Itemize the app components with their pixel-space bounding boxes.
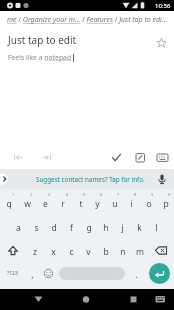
staticText: 9 [151,192,154,197]
staticText: 0 [168,192,171,197]
staticText: Just tap to edit [8,33,77,47]
button[interactable] [0,146,174,169]
staticText: 4 [66,192,69,197]
staticText: x [51,246,56,258]
button[interactable]: x [44,239,62,262]
staticText: v [86,246,91,258]
button[interactable]: b [97,239,114,262]
button[interactable]: v [80,239,97,262]
button[interactable]: Feels like a notepad [8,53,72,62]
button[interactable]: r [54,191,72,215]
staticText: t [79,198,83,210]
staticText: 2 [30,192,33,197]
staticText: y [95,198,100,210]
button[interactable]: h [97,215,114,239]
button[interactable]: p [157,191,174,215]
button[interactable] [148,239,174,262]
staticText: . [135,269,138,281]
staticText: z [33,246,37,258]
staticText: q [6,198,12,210]
staticText: , [31,269,34,281]
button[interactable]: a [9,215,27,239]
button[interactable]: n [114,239,131,262]
staticText: d [51,222,57,234]
button[interactable]: l [148,215,165,239]
staticText: m [136,246,144,258]
button[interactable] [130,289,174,310]
staticText: g [86,222,92,234]
staticText: i [130,198,133,210]
button[interactable]: z [26,239,44,262]
staticText: ?123 [7,270,18,277]
staticText: 8 [134,192,137,197]
staticText: s [34,222,39,234]
button[interactable] [154,35,168,49]
staticText: h [103,222,109,234]
staticText: j [121,222,124,234]
button[interactable]: , [24,262,40,285]
button[interactable]: Suggest contact names? Tap for info. [0,169,174,189]
staticText: f [70,222,73,234]
button[interactable]: f [63,215,80,239]
staticText: 6 [100,192,103,197]
button[interactable]: e [36,191,54,215]
staticText: a [16,222,21,234]
button[interactable]: j [114,215,131,239]
button[interactable]: w [18,191,36,215]
button[interactable] [0,289,43,310]
staticText: l [155,222,158,234]
button[interactable] [40,262,56,285]
staticText: 5 [83,192,86,197]
staticText: w [24,198,31,210]
button[interactable]: . [128,262,144,285]
button[interactable]: y [89,191,106,215]
button[interactable]: s [27,215,45,239]
button[interactable]: c [62,239,80,262]
button[interactable]: g [80,215,97,239]
staticText: e [43,198,48,210]
staticText: b [103,246,109,258]
button[interactable]: ?123 [0,262,24,285]
button[interactable]: u [106,191,123,215]
button[interactable]: k [131,215,148,239]
button[interactable]: t [72,191,89,215]
button[interactable]: me / Organize your m… / Features / Just … [0,11,174,26]
button[interactable]: d [45,215,63,239]
button[interactable] [0,239,26,262]
button[interactable]: m [131,239,148,262]
staticText: 1 [12,192,15,197]
staticText: 3 [48,192,51,197]
button[interactable]: i [123,191,140,215]
button[interactable] [59,267,125,280]
button[interactable] [43,289,86,310]
staticText: 10:56 [155,2,171,10]
staticText: c [69,246,74,258]
button[interactable] [86,289,130,310]
staticText: o [146,198,152,210]
staticText: Suggest contact names? Tap for info. [36,175,145,184]
staticText: u [112,198,118,210]
staticText: r [61,198,65,210]
staticText: k [137,222,142,234]
button[interactable]: q [0,191,18,215]
staticText: 7 [117,192,120,197]
staticText: n [120,246,126,258]
button[interactable]: o [140,191,157,215]
button[interactable] [144,262,174,285]
staticText: p [163,198,169,210]
staticText: me / Organize your m… / Features / Just … [7,15,168,25]
